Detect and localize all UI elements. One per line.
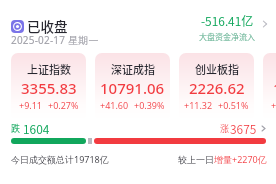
staticText: 大盘资金净流入 <box>199 31 255 43</box>
staticText: +41.60 <box>100 99 129 111</box>
staticText: 3675 <box>230 120 257 137</box>
staticText: 今日成交额总计19718亿 <box>11 153 109 165</box>
other: Up down details <box>259 124 268 133</box>
staticText: 创业板指 <box>195 61 239 77</box>
staticText: 1604 <box>23 120 50 137</box>
staticText: 已收盘 <box>27 16 68 36</box>
staticText: +0.51% <box>218 99 249 111</box>
staticText: +9.11 <box>19 99 43 111</box>
staticText: 3355.83 <box>21 78 77 98</box>
staticText: 涨 <box>220 122 230 135</box>
staticText: +0.39% <box>134 99 165 111</box>
staticText: 2226.62 <box>189 78 245 98</box>
staticText: 增量+2270亿 <box>214 153 267 165</box>
staticText: +11.32 <box>184 99 213 111</box>
staticText: 深证成指 <box>111 61 155 77</box>
button[interactable]: 创业板指 <box>179 53 254 120</box>
button[interactable]: 上证指数 <box>11 53 86 120</box>
staticText: 较上一日 <box>178 154 214 165</box>
other: More market funds <box>260 19 270 29</box>
staticText: +5.22 <box>271 99 276 111</box>
staticText: +0.27% <box>48 99 79 111</box>
button[interactable]: -516.41亿 <box>199 11 270 43</box>
staticText: 跌 <box>11 122 21 135</box>
staticText: 上证指数 <box>27 61 71 77</box>
button[interactable]: 科创50 <box>263 53 276 120</box>
staticText: 1050.10 <box>273 78 276 98</box>
button[interactable]: 深证成指 <box>95 53 170 120</box>
staticText: 10791.06 <box>100 78 165 98</box>
staticText: 2025-02-17 星期一 <box>11 33 99 47</box>
staticText: -516.41亿 <box>201 12 254 29</box>
